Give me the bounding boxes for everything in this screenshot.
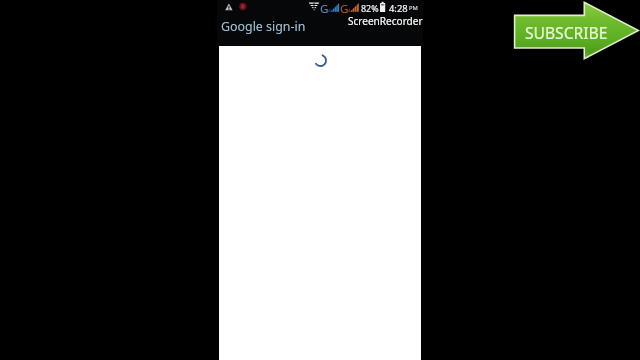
other: Status bar: recording, Wi-Fi, signal, 82…: [0, 0, 640, 360]
button[interactable]: Subscribe: [512, 0, 640, 62]
staticText: G: [320, 1, 329, 17]
staticText: 4:28: [389, 2, 408, 15]
staticText: PM: [409, 4, 418, 12]
staticText: ScreenRecorder: [348, 14, 423, 28]
staticText: G: [340, 1, 349, 17]
staticText: SUBSCRIBE: [525, 22, 608, 43]
staticText: Google sign-in: [221, 18, 306, 35]
button[interactable]: Google sign-in: [217, 14, 423, 46]
staticText: 82%: [361, 2, 379, 14]
